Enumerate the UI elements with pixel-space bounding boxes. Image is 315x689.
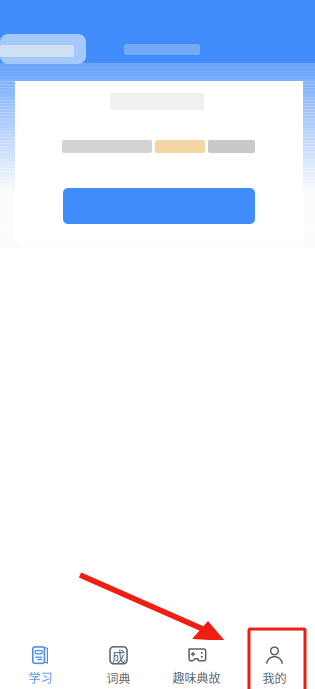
button[interactable]: Search — [0, 34, 86, 64]
staticText: 词典 — [106, 669, 130, 687]
button[interactable]: 趣味典故 — [157, 640, 235, 689]
staticText: 趣味典故 — [172, 669, 220, 686]
button[interactable]: 学习 — [1, 640, 79, 689]
staticText: 学习 — [28, 669, 52, 686]
button[interactable]: 我的 — [235, 640, 313, 689]
staticText: 我的 — [262, 669, 286, 687]
button[interactable]: 成 — [79, 640, 157, 689]
button[interactable]: Confirm — [63, 188, 255, 224]
staticText: 成 — [112, 646, 125, 665]
